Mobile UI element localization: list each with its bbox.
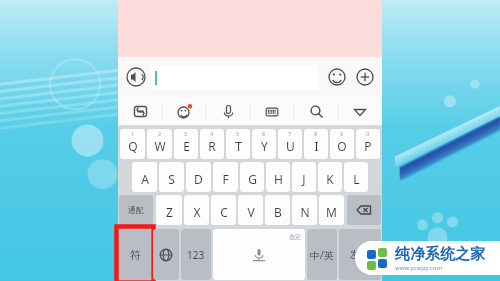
button[interactable]: 7 [278, 129, 302, 159]
button[interactable]: 5 [226, 129, 250, 159]
staticText: www.ycwjzy.com [395, 264, 443, 272]
button[interactable]: D [186, 162, 211, 192]
button[interactable]: 发送 [339, 229, 381, 280]
button[interactable]: Sogou [118, 97, 162, 126]
button[interactable]: 4 [200, 129, 224, 159]
staticText: G [248, 171, 257, 187]
staticText: 3 [184, 130, 188, 137]
staticText: 0 [366, 130, 370, 137]
button[interactable]: H [266, 162, 290, 192]
button[interactable]: A [132, 162, 157, 192]
button[interactable]: 123 [181, 229, 211, 280]
staticText: V [247, 204, 255, 220]
button[interactable]: Change language [153, 229, 179, 280]
staticText: P [364, 138, 372, 154]
staticText: 2 [158, 130, 162, 137]
button[interactable]: Search [294, 97, 338, 126]
staticText: 5 [236, 130, 240, 137]
staticText: I [314, 138, 319, 154]
button[interactable]: S [159, 162, 184, 192]
staticText: A [141, 171, 149, 187]
button[interactable]: 中/英 [307, 229, 337, 280]
staticText: 符 [130, 248, 141, 262]
button[interactable]: F [213, 162, 238, 192]
button[interactable]: B [265, 195, 290, 225]
button[interactable]: More [352, 64, 378, 90]
staticText: U [286, 138, 295, 154]
button[interactable]: 9 [330, 129, 354, 159]
staticText: 纯净系统之家 [395, 245, 485, 264]
staticText: Y [261, 138, 268, 154]
button[interactable]: Handwriting [250, 97, 294, 126]
button[interactable]: M [319, 195, 344, 225]
button[interactable]: 通配 [119, 195, 153, 225]
staticText: Q [128, 138, 138, 154]
button[interactable]: G [240, 162, 264, 192]
button[interactable]: K [318, 162, 342, 192]
button[interactable]: 3 [174, 129, 198, 159]
button[interactable]: Emoji [324, 64, 350, 90]
button[interactable]: Space [213, 229, 305, 280]
staticText: 6 [262, 130, 266, 137]
staticText: 4 [210, 130, 214, 137]
button[interactable]: Expression [162, 97, 206, 126]
button[interactable]: C [211, 195, 236, 225]
staticText: J [302, 171, 306, 187]
button[interactable]: 0 [356, 129, 380, 159]
staticText: T [235, 138, 242, 154]
staticText: 通配 [128, 205, 144, 215]
staticText: E [183, 138, 190, 154]
button[interactable]: L [344, 162, 368, 192]
staticText: N [300, 204, 310, 220]
staticText: K [326, 171, 334, 187]
staticText: O [337, 138, 347, 154]
staticText: 7 [288, 130, 292, 137]
staticText: R [208, 138, 216, 154]
staticText: S [168, 171, 175, 187]
staticText: 选定 [289, 233, 301, 241]
button[interactable]: Z [156, 195, 182, 225]
button[interactable]: Collapse [338, 97, 382, 126]
button[interactable]: 2 [147, 129, 172, 159]
button[interactable]: J [292, 162, 316, 192]
staticText: Z [166, 204, 173, 220]
button[interactable]: 符 [119, 229, 151, 280]
button[interactable] [151, 65, 318, 90]
staticText: L [353, 171, 360, 187]
button[interactable]: V [238, 195, 263, 225]
staticText: F [222, 171, 229, 187]
staticText: D [194, 171, 203, 187]
staticText: W [154, 138, 166, 154]
button[interactable]: N [292, 195, 317, 225]
staticText: 发送 [350, 248, 370, 261]
staticText: B [274, 204, 282, 220]
button[interactable]: Voice [206, 97, 250, 126]
staticText: M [326, 204, 337, 220]
button[interactable]: Backspace [347, 195, 381, 225]
staticText: 9 [340, 130, 344, 137]
staticText: X [193, 204, 201, 220]
button[interactable]: 8 [304, 129, 328, 159]
button[interactable]: X [184, 195, 209, 225]
staticText: 中/英 [310, 248, 334, 262]
button[interactable]: 6 [252, 129, 276, 159]
button[interactable]: 1 [120, 129, 145, 159]
staticText: 1 [131, 130, 135, 137]
staticText: C [220, 204, 228, 220]
button[interactable]: Voice input [124, 65, 148, 89]
staticText: 8 [314, 130, 318, 137]
staticText: H [274, 171, 283, 187]
staticText: 123 [187, 248, 205, 262]
